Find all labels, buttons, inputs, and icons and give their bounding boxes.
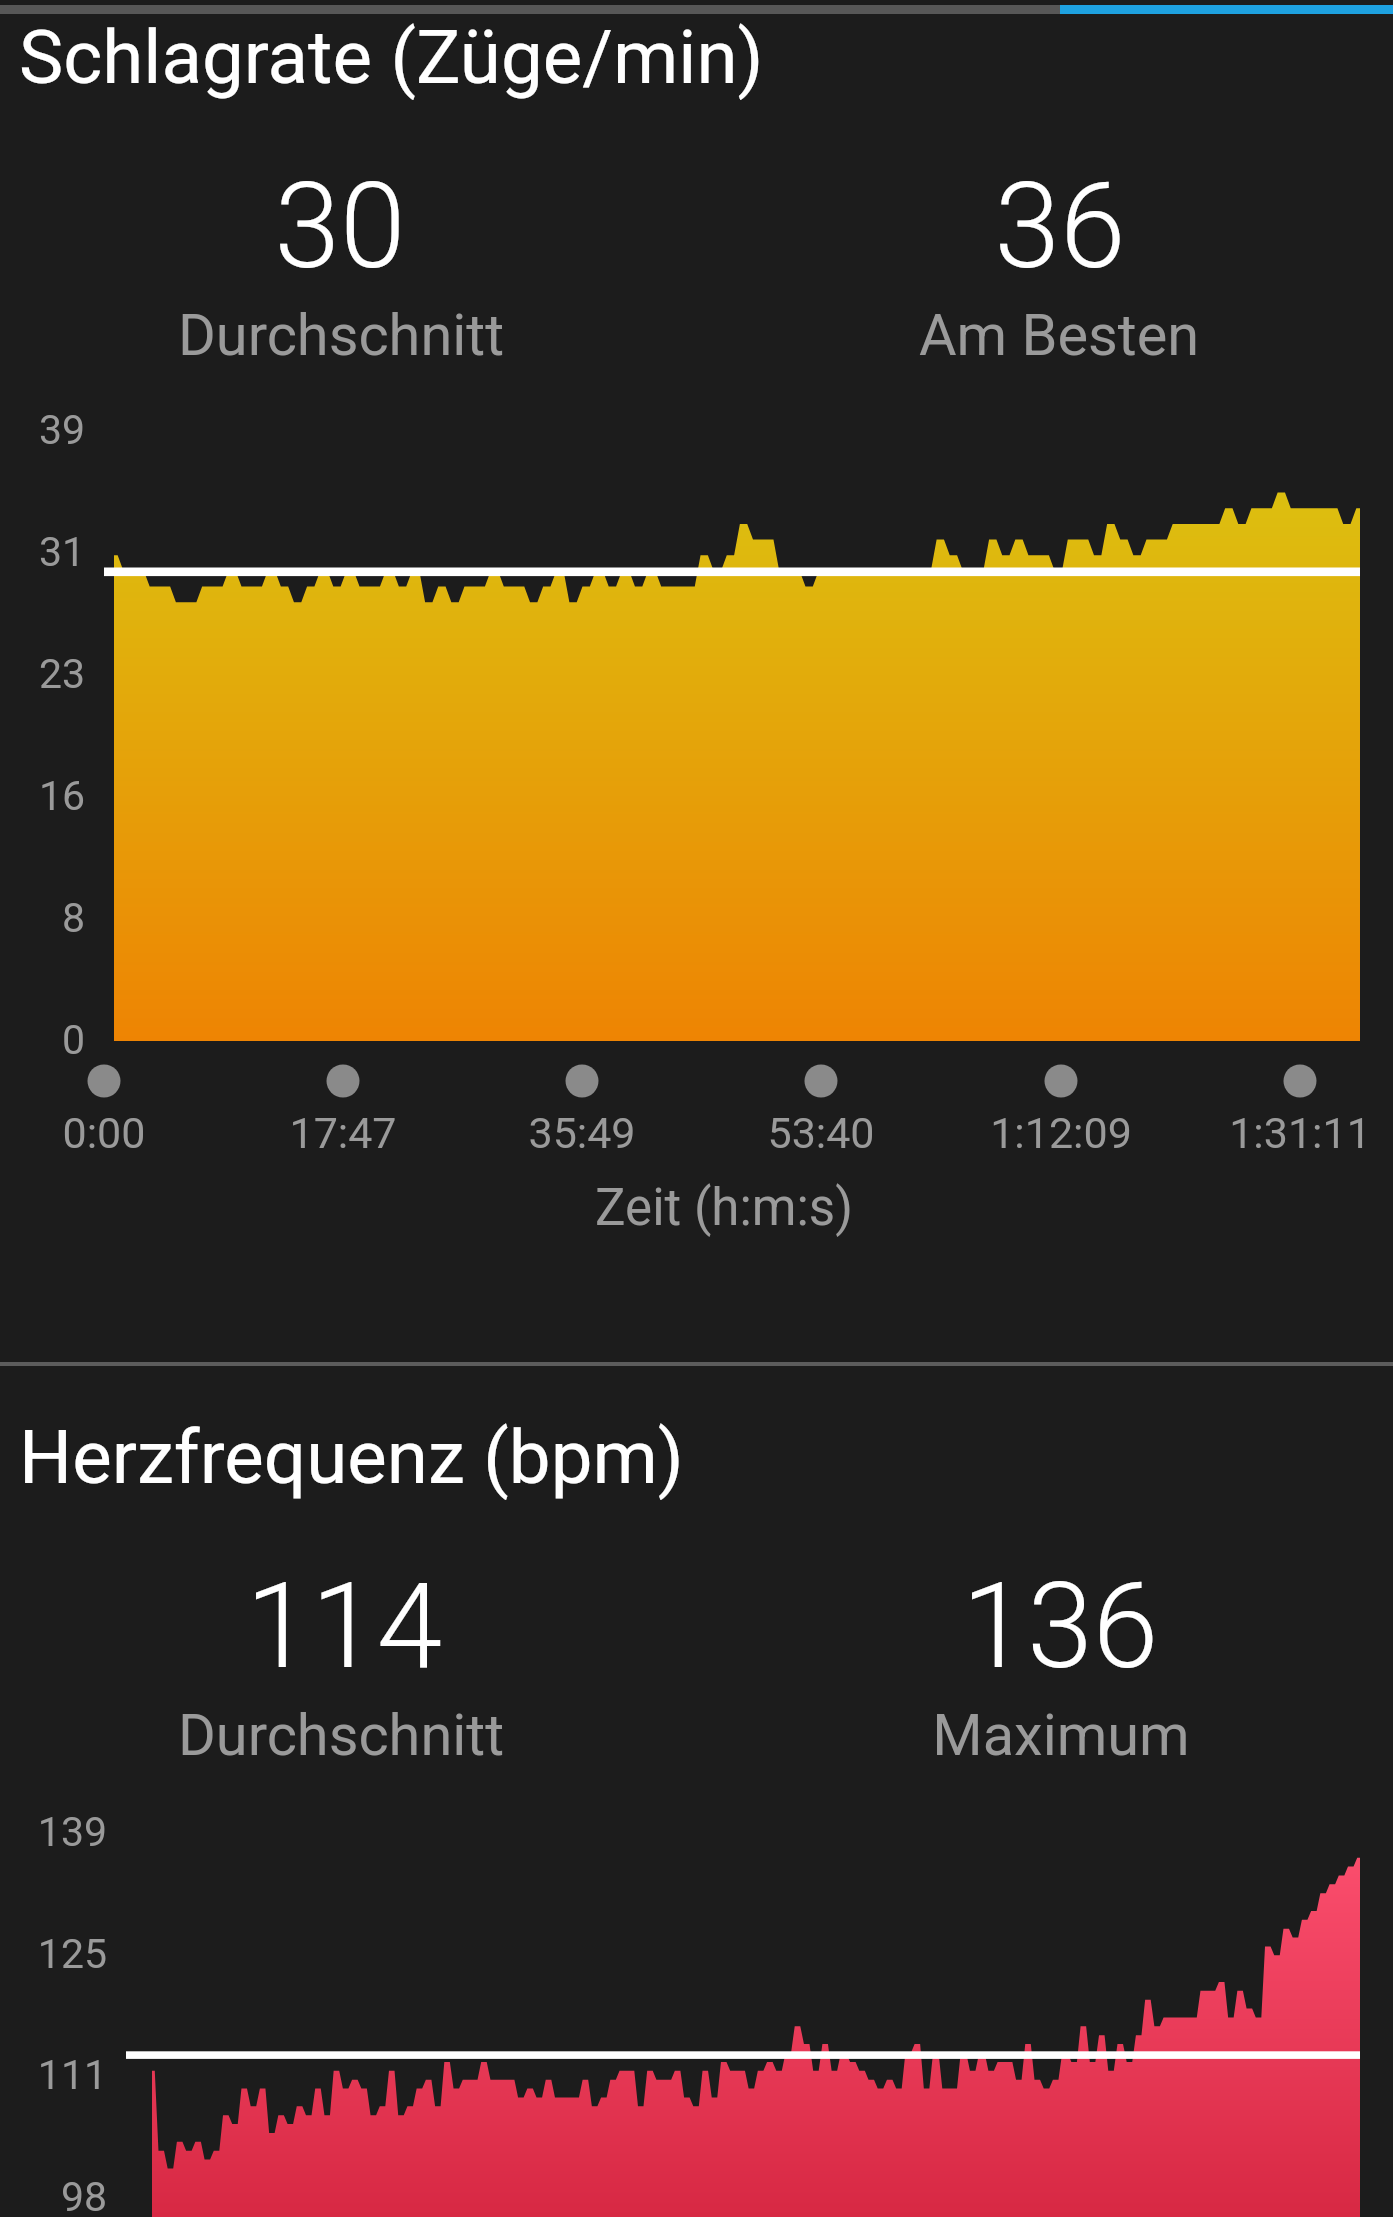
staticText: 17:47: [0, 1108, 743, 1158]
staticText: 0:00: [0, 1108, 504, 1158]
staticText: 1:31:11: [900, 1108, 1393, 1158]
button[interactable]: Stroke rate chart: [0, 14, 1393, 1362]
staticText: 36: [660, 158, 1393, 296]
staticText: 1:12:09: [661, 1108, 1393, 1158]
button[interactable]: Heart rate chart: [0, 1366, 1393, 2217]
staticText: Am Besten: [659, 301, 1393, 369]
staticText: 31: [0, 528, 85, 576]
staticText: 23: [0, 650, 85, 698]
button[interactable]: Scroll position: [0, 5, 1393, 14]
staticText: 30: [0, 158, 740, 296]
staticText: 114: [0, 1558, 744, 1696]
staticText: 0: [0, 1016, 85, 1064]
staticText: 35:49: [182, 1108, 982, 1158]
staticText: Durchschnitt: [0, 301, 741, 369]
staticText: 39: [0, 406, 85, 454]
staticText: Maximum: [661, 1701, 1393, 1769]
staticText: 136: [660, 1558, 1393, 1696]
staticText: 111: [0, 2051, 107, 2099]
staticText: 53:40: [421, 1108, 1221, 1158]
staticText: 125: [0, 1930, 107, 1978]
staticText: 8: [0, 894, 85, 942]
staticText: 16: [0, 772, 85, 820]
staticText: Zeit (h:m:s): [324, 1178, 1124, 1238]
staticText: Herzfrequenz (bpm): [19, 1414, 684, 1501]
staticText: 139: [0, 1808, 107, 1856]
staticText: Durchschnitt: [0, 1701, 741, 1769]
staticText: Schlagrate (Züge/min): [19, 14, 764, 101]
staticText: 98: [0, 2173, 107, 2217]
